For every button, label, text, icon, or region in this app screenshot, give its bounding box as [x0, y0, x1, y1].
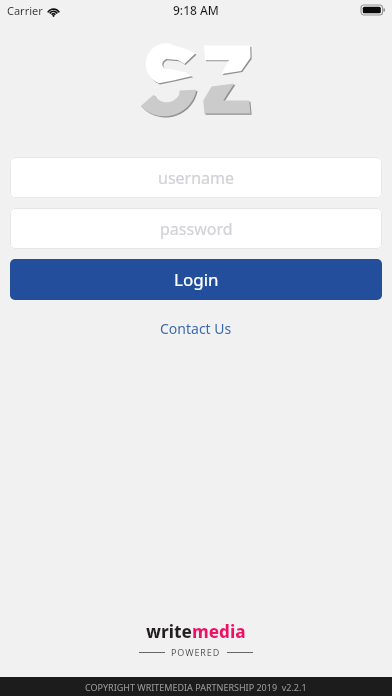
button[interactable]: Contact Us [150, 315, 242, 342]
button[interactable]: Login [10, 259, 382, 300]
staticText: username [158, 167, 235, 189]
button[interactable]: username [10, 157, 382, 198]
staticText: Carrier [7, 3, 43, 18]
staticText: write [146, 620, 192, 643]
staticText: password [160, 218, 233, 240]
staticText: 9:18 AM [173, 2, 219, 18]
button[interactable]: password [10, 208, 382, 249]
staticText: media [192, 620, 246, 643]
staticText: COPYRIGHT WRITEMEDIA PARTNERSHIP 2019 v2… [85, 681, 307, 693]
staticText: Login [174, 268, 219, 291]
staticText: POWERED [171, 646, 221, 658]
